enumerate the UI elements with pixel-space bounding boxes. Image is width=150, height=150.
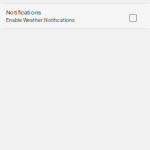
staticText: Enable Weather Notifications [6, 17, 75, 23]
button[interactable]: Notifications [0, 3, 150, 29]
staticText: Notifications [6, 9, 41, 16]
